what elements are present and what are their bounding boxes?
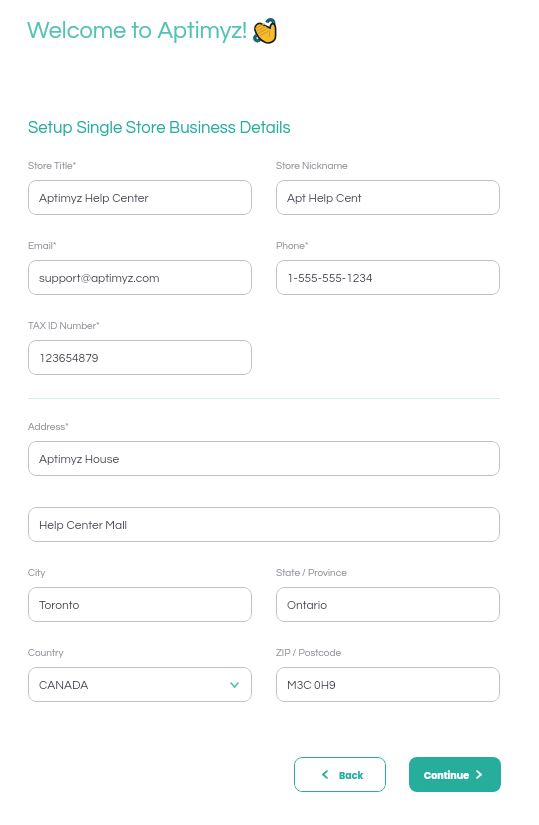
staticText: Toronto [39, 599, 80, 611]
staticText: ZIP / Postcode [276, 648, 341, 658]
button[interactable]: Apt Help Cent [276, 180, 500, 215]
button[interactable]: CANADA [28, 667, 252, 702]
button[interactable]: support@aptimyz.com [28, 260, 252, 295]
button[interactable]: Continue [409, 757, 501, 792]
staticText: Apt Help Cent [287, 192, 362, 204]
staticText: Country [28, 648, 64, 658]
staticText: Store Nickname [276, 161, 348, 171]
staticText: Setup Single Store Business Details [28, 119, 291, 136]
staticText: TAX ID Number* [28, 321, 100, 331]
button[interactable]: Toronto [28, 587, 252, 622]
staticText: State / Province [276, 568, 347, 578]
staticText: support@aptimyz.com [39, 272, 160, 284]
staticText: Welcome to Aptimyz! [27, 19, 248, 43]
button[interactable]: 1-555-555-1234 [276, 260, 500, 295]
button[interactable]: Aptimyz Help Center [28, 180, 252, 215]
staticText: Store Title* [28, 161, 77, 171]
staticText: Address* [28, 422, 69, 432]
staticText: CANADA [39, 679, 89, 691]
other: Waving hand [251, 16, 281, 46]
button[interactable]: 123654879 [28, 340, 252, 375]
staticText: Phone* [276, 241, 309, 251]
staticText: Continue [424, 769, 470, 782]
staticText: Aptimyz House [39, 453, 120, 465]
staticText: Ontario [287, 599, 327, 611]
staticText: Email* [28, 241, 57, 251]
button[interactable]: Help Center Mall [28, 507, 500, 542]
staticText: City [28, 568, 46, 578]
staticText: M3C 0H9 [287, 679, 336, 691]
staticText: Help Center Mall [39, 519, 128, 531]
staticText: Back [339, 769, 364, 782]
button[interactable]: Back [294, 757, 386, 792]
staticText: 1-555-555-1234 [287, 272, 373, 284]
button[interactable]: Ontario [276, 587, 500, 622]
staticText: Aptimyz Help Center [39, 192, 149, 204]
other: Open dropdown [230, 682, 239, 688]
button[interactable]: Aptimyz House [28, 441, 500, 476]
button[interactable]: M3C 0H9 [276, 667, 500, 702]
staticText: 123654879 [39, 352, 99, 364]
